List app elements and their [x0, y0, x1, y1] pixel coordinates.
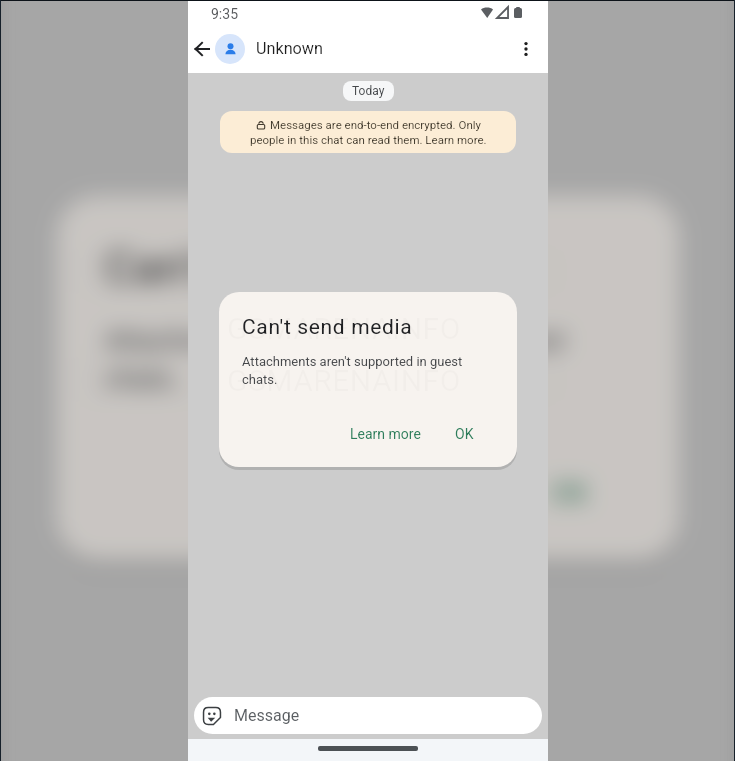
button[interactable]: Learn more — [309, 463, 500, 522]
button[interactable]: OK — [445, 420, 484, 448]
button[interactable]: Today — [343, 81, 394, 101]
staticText: OK — [455, 426, 474, 442]
staticText: Attachments aren't supported in guest ch… — [242, 354, 499, 387]
button[interactable]: Learn more — [340, 420, 431, 448]
button[interactable]: More options — [505, 28, 547, 69]
button[interactable]: Back — [188, 28, 215, 69]
button[interactable]: Message — [194, 697, 542, 734]
staticText: OK — [550, 476, 589, 509]
staticText: GSMARENAINFO — [227, 311, 461, 346]
staticText: Today — [352, 84, 385, 98]
staticText: Learn more — [350, 426, 421, 442]
staticText: Message — [234, 706, 300, 725]
button[interactable]: OK — [529, 463, 610, 522]
staticText: GSMARENAINFO — [73, 235, 562, 308]
staticText: Attachments aren't supported in guest ch… — [105, 325, 642, 394]
button[interactable]: Messages are end-to-end encrypted. Only — [220, 111, 516, 153]
staticText: Unknown — [256, 39, 323, 58]
staticText: people in this chat can read them. Learn… — [250, 133, 487, 146]
staticText: 9:35 — [211, 6, 238, 22]
staticText: GSMARENAINFO — [73, 344, 562, 417]
staticText: Can't send media — [105, 244, 462, 296]
staticText: Can't send media — [242, 315, 413, 340]
staticText: Messages are end-to-end encrypted. Only — [270, 118, 481, 131]
staticText: GSMARENAINFO — [227, 363, 461, 398]
